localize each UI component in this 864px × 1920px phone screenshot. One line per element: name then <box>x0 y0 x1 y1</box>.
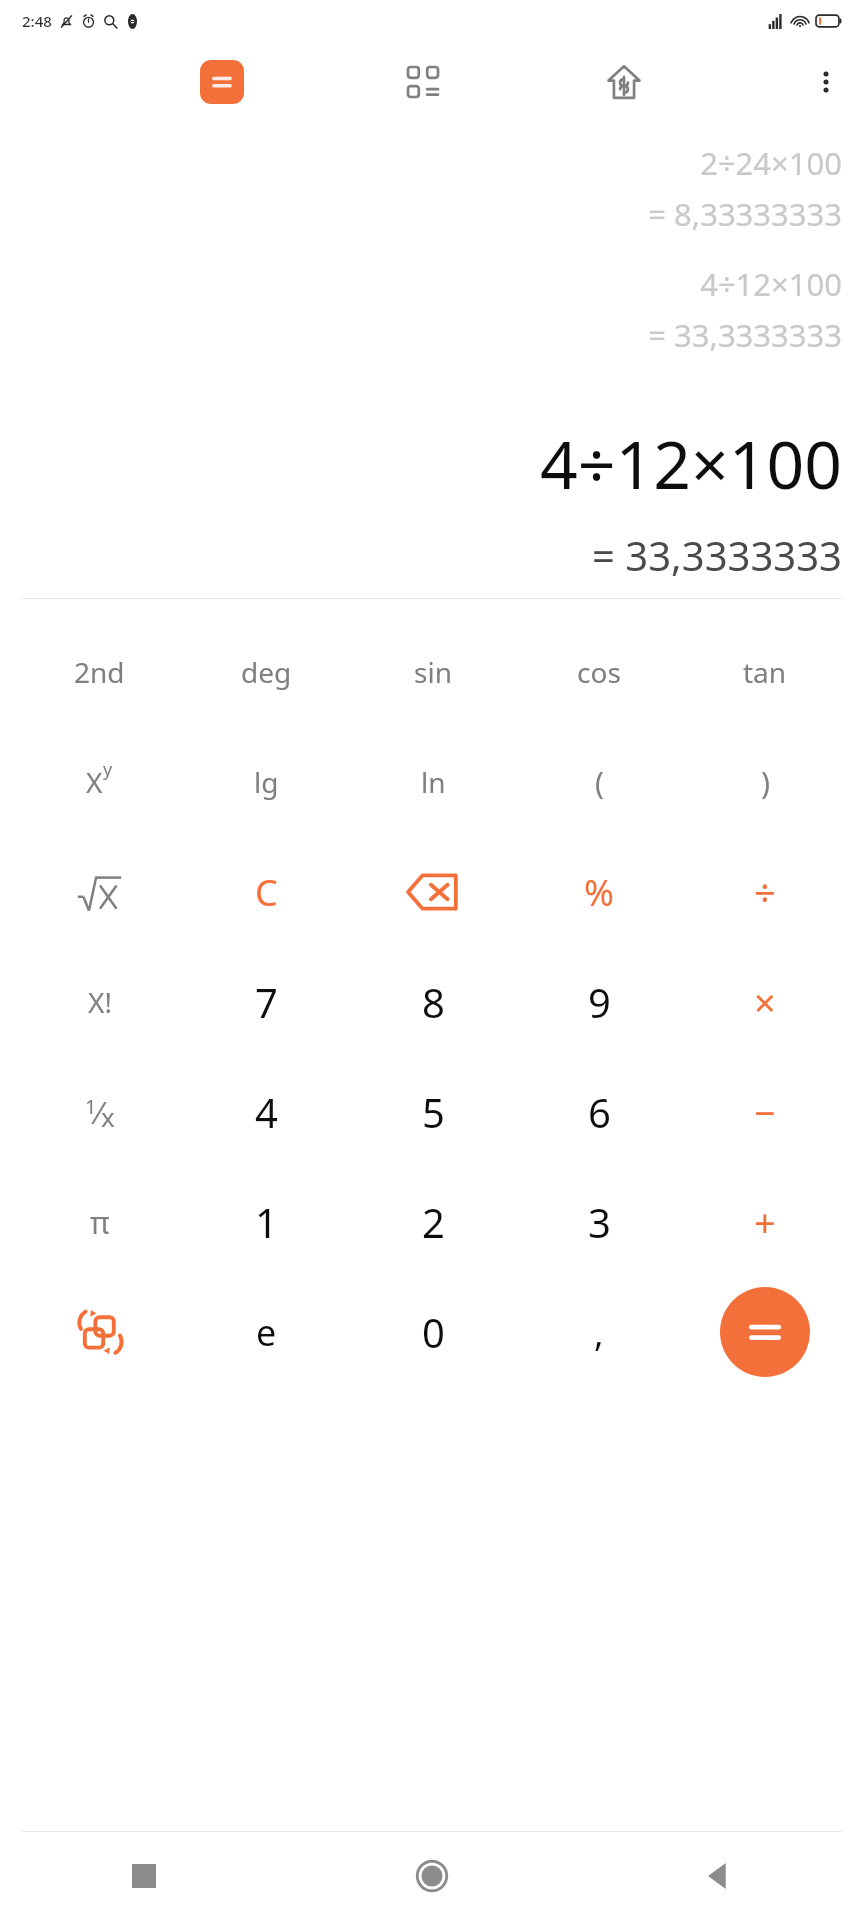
button[interactable]: Home <box>288 1832 576 1920</box>
button[interactable]: , <box>516 1277 682 1387</box>
button[interactable]: All tools <box>395 54 451 110</box>
button[interactable]: Calculator <box>200 60 244 104</box>
button[interactable]: X! <box>16 947 183 1057</box>
staticText: 4÷12×100 <box>539 418 842 508</box>
staticText: 0 <box>422 1305 445 1359</box>
staticText: + <box>754 1196 776 1248</box>
button[interactable]: lg <box>183 727 350 837</box>
staticText: ( <box>595 762 604 803</box>
staticText: 4 <box>255 1085 278 1139</box>
button[interactable]: + <box>682 1167 848 1277</box>
staticText: − <box>754 1086 776 1138</box>
button[interactable]: e <box>183 1277 350 1387</box>
staticText: , <box>594 1308 604 1357</box>
button[interactable]: Back <box>576 1832 864 1920</box>
staticText: = 8,33333333 <box>648 193 842 235</box>
staticText: 7 <box>255 975 278 1029</box>
button[interactable]: deg <box>183 617 350 727</box>
button[interactable]: cos <box>516 617 682 727</box>
button[interactable]: Recent apps <box>0 1832 288 1920</box>
staticText: e <box>256 1308 277 1357</box>
button[interactable]: × <box>682 947 848 1057</box>
button[interactable]: Mortgage calculator <box>595 53 653 111</box>
staticText: 6 <box>588 1085 611 1139</box>
staticText: 4÷12×100 <box>700 263 842 305</box>
staticText: sin <box>414 653 452 691</box>
button[interactable]: Unit converter <box>16 1277 183 1387</box>
staticText: ln <box>421 763 446 801</box>
staticText: = 33,3333333 <box>592 528 842 582</box>
staticText: ÷ <box>754 866 776 918</box>
staticText: 2 <box>422 1195 445 1249</box>
button[interactable]: % <box>516 837 682 947</box>
staticText: 2nd <box>74 653 125 691</box>
button[interactable]: ( <box>516 727 682 837</box>
button[interactable]: 2 <box>350 1167 516 1277</box>
button[interactable]: X <box>16 727 183 837</box>
staticText: ) <box>761 762 770 803</box>
staticText: × <box>754 976 776 1028</box>
button[interactable]: Equals <box>720 1287 810 1377</box>
button[interactable]: 0 <box>350 1277 516 1387</box>
staticText: π <box>90 1202 110 1243</box>
button[interactable]: ÷ <box>682 837 848 947</box>
button[interactable]: 2nd <box>16 617 183 727</box>
staticText: 8 <box>422 975 445 1029</box>
staticText: cos <box>577 653 621 691</box>
button[interactable]: 5 <box>350 1057 516 1167</box>
staticText: % <box>584 868 614 917</box>
button[interactable]: 4 <box>183 1057 350 1167</box>
staticText: 1 <box>255 1195 278 1249</box>
button[interactable]: More options <box>798 54 854 110</box>
staticText: 5 <box>422 1085 445 1139</box>
staticText: C <box>255 868 278 917</box>
staticText: tan <box>743 653 787 691</box>
staticText: 3 <box>588 1195 611 1249</box>
staticText: x <box>101 1099 115 1134</box>
staticText: 2:48 <box>22 11 52 31</box>
button[interactable]: 3 <box>516 1167 682 1277</box>
button[interactable]: 6 <box>516 1057 682 1167</box>
button[interactable]: − <box>682 1057 848 1167</box>
button[interactable]: Reciprocal <box>16 1057 183 1167</box>
staticText: X! <box>88 983 112 1021</box>
button[interactable]: C <box>183 837 350 947</box>
button[interactable]: sin <box>350 617 516 727</box>
staticText: ⁄ <box>97 1092 101 1133</box>
button[interactable]: 9 <box>516 947 682 1057</box>
button[interactable]: π <box>16 1167 183 1277</box>
staticText: 2÷24×100 <box>700 142 842 184</box>
button[interactable]: 8 <box>350 947 516 1057</box>
staticText: = 33,3333333 <box>648 314 842 356</box>
button[interactable]: Backspace <box>350 837 516 947</box>
staticText: lg <box>254 763 279 801</box>
staticText: y <box>103 757 113 782</box>
button[interactable]: 1 <box>183 1167 350 1277</box>
staticText: 9 <box>588 975 611 1029</box>
staticText: 1 <box>85 1093 97 1120</box>
staticText: deg <box>241 653 292 691</box>
button[interactable]: ) <box>682 727 848 837</box>
button[interactable]: 7 <box>183 947 350 1057</box>
button[interactable]: Square root <box>16 837 183 947</box>
button[interactable]: tan <box>682 617 848 727</box>
staticText: X <box>86 763 103 801</box>
button[interactable]: ln <box>350 727 516 837</box>
